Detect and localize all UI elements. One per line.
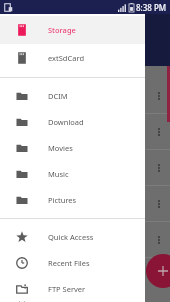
button[interactable]: More options — [152, 197, 166, 211]
button[interactable]: Recent Files — [0, 250, 145, 276]
button[interactable]: More options — [152, 89, 166, 103]
staticText: extSdCard — [48, 53, 84, 63]
staticText: Pictures — [48, 195, 77, 205]
button[interactable]: Movies — [0, 135, 145, 161]
button[interactable]: FTP Server — [0, 276, 145, 302]
button[interactable]: extSdCard — [0, 44, 145, 72]
staticText: DCIM — [48, 91, 68, 101]
button[interactable]: More options — [152, 161, 166, 175]
button[interactable]: DCIM — [0, 83, 145, 109]
staticText: FTP Server — [48, 284, 86, 294]
staticText: Movies — [48, 143, 73, 153]
button[interactable]: Add — [146, 254, 170, 288]
staticText: Recent Files — [48, 258, 90, 268]
button[interactable]: Download — [0, 109, 145, 135]
button[interactable]: More options — [0, 222, 170, 258]
staticText: Storage — [48, 25, 76, 35]
button[interactable]: Quick Access — [0, 224, 145, 250]
button[interactable]: More options — [152, 125, 166, 139]
button[interactable]: More options — [152, 233, 166, 247]
button[interactable]: More options — [0, 150, 170, 186]
button[interactable]: More options — [0, 186, 170, 222]
button[interactable]: Music — [0, 161, 145, 187]
staticText: Quick Access — [48, 232, 94, 242]
button[interactable]: More options — [0, 78, 170, 114]
staticText: 8:38 PM — [136, 2, 167, 13]
button[interactable]: More options — [0, 114, 170, 150]
button[interactable]: Pictures — [0, 187, 145, 213]
staticText: Download — [48, 117, 84, 127]
button[interactable]: Storage — [0, 16, 145, 44]
staticText: Music — [48, 169, 69, 179]
